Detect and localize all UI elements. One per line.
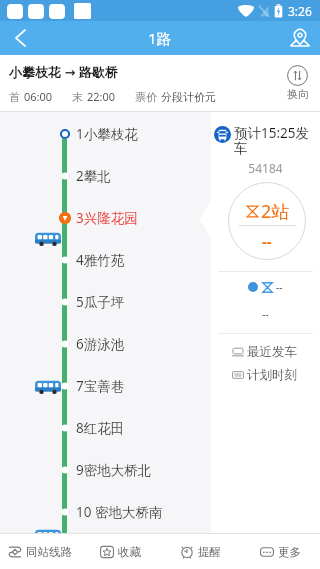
button[interactable]: 同站线路 — [0, 534, 80, 569]
button[interactable]: 9密地大桥北 — [0, 449, 320, 491]
staticText: 同站线路 — [26, 545, 72, 559]
button[interactable]: 8红花田 — [0, 407, 320, 449]
button[interactable]: 收藏 — [80, 534, 160, 569]
staticText: 最近发车 — [247, 344, 297, 360]
staticText: 小攀枝花 → 路歇桥 — [9, 63, 118, 81]
staticText: -- — [276, 280, 283, 294]
button[interactable]: 最近发车 — [211, 341, 320, 363]
staticText: 1路 — [148, 28, 172, 48]
staticText: 换向 — [287, 87, 309, 101]
staticText: 收藏 — [118, 545, 141, 559]
staticText: 6游泳池 — [76, 335, 125, 353]
staticText: -- — [211, 307, 320, 321]
button[interactable]: 7宝善巷 — [0, 365, 320, 407]
button[interactable]: 6游泳池 — [0, 323, 320, 365]
staticText: 54184 — [211, 160, 320, 176]
staticText: 5瓜子坪 — [76, 293, 125, 311]
staticText: 06:00 — [24, 89, 53, 104]
button[interactable]: 提醒 — [160, 534, 240, 569]
button[interactable]: 4雅竹苑 — [0, 239, 320, 281]
staticText: 计划时刻 — [247, 367, 297, 383]
button[interactable]: 1小攀枝花 — [0, 113, 320, 155]
staticText: 2攀北 — [76, 167, 111, 185]
staticText: 2站 — [261, 199, 290, 224]
button[interactable]: Back — [0, 21, 40, 55]
staticText: 3兴隆花园 — [76, 209, 138, 227]
staticText: 预计15:25发车 — [234, 124, 319, 157]
button[interactable]: 10 密地大桥南 — [0, 491, 320, 533]
staticText: -- — [262, 231, 272, 251]
staticText: 22:00 — [87, 89, 116, 104]
button[interactable]: 换向 — [275, 55, 320, 111]
staticText: 3:26 — [288, 3, 312, 19]
staticText: 首 — [9, 90, 20, 104]
staticText: 分段计价元 — [161, 90, 216, 104]
staticText: 10 密地大桥南 — [76, 503, 163, 521]
staticText: 9密地大桥北 — [76, 461, 152, 479]
button[interactable]: 更多 — [240, 534, 320, 569]
staticText: 末 — [72, 90, 83, 104]
staticText: 更多 — [278, 545, 301, 559]
button[interactable]: 5瓜子坪 — [0, 281, 320, 323]
staticText: 1小攀枝花 — [76, 125, 138, 143]
staticText: 8红花田 — [76, 419, 125, 437]
staticText: 4雅竹苑 — [76, 251, 125, 269]
button[interactable]: 3兴隆花园 — [0, 197, 320, 239]
staticText: 票价 — [135, 90, 157, 104]
button[interactable]: Map — [280, 21, 320, 55]
button[interactable]: 计划时刻 — [211, 364, 320, 386]
staticText: 7宝善巷 — [76, 377, 125, 395]
staticText: 提醒 — [198, 545, 221, 559]
button[interactable]: 2攀北 — [0, 155, 320, 197]
